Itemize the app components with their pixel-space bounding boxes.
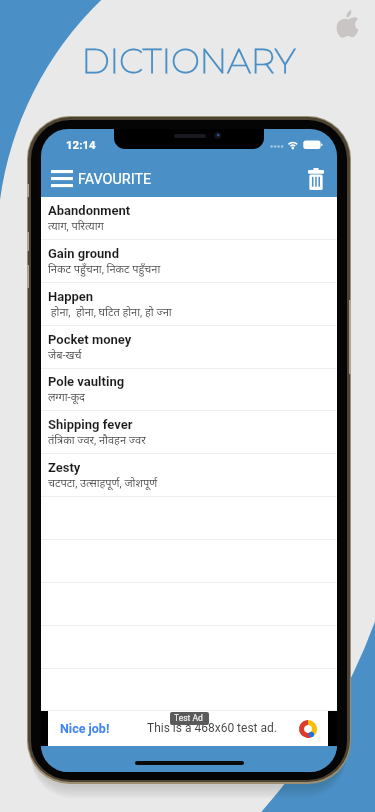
staticText: तंत्रिका ज्वर, नौवहन ज्वर [48, 432, 146, 447]
button[interactable]: Abandonment [41, 197, 337, 240]
button[interactable]: Delete all favourites [294, 162, 334, 196]
staticText: DICTIONARY [1, 40, 375, 81]
button[interactable]: Shipping fever [41, 411, 337, 454]
staticText: FAVOURITE [78, 171, 152, 188]
staticText: Happen [48, 289, 94, 304]
button[interactable]: Happen [41, 283, 337, 326]
button[interactable]: Open navigation drawer [43, 162, 77, 196]
button[interactable]: Nice job! [48, 711, 328, 746]
staticText: चटपटा, उत्साहपूर्ण, जोशपूर्ण [48, 475, 158, 490]
staticText: This is a 468x60 test ad. [147, 721, 277, 735]
staticText: जेब-खर्च [48, 347, 82, 362]
staticText: होना, होना, घटित होना, हो ज्ना [48, 304, 172, 319]
staticText: Zesty [48, 460, 81, 475]
staticText: त्याग, परित्याग [48, 218, 104, 233]
staticText: निकट पहुँचना, निकट पहुँचना [48, 261, 161, 276]
staticText: Shipping fever [48, 417, 133, 432]
button[interactable] [41, 668, 337, 711]
button[interactable]: Pole vaulting [41, 368, 337, 411]
staticText: Pocket money [48, 332, 132, 347]
staticText: Pole vaulting [48, 374, 125, 389]
staticText: Abandonment [48, 203, 131, 218]
button[interactable]: Gain ground [41, 240, 337, 283]
staticText: 12:14 [66, 138, 96, 151]
button[interactable]: Pocket money [41, 326, 337, 369]
staticText: Test Ad [174, 713, 203, 723]
staticText: लग्गा-कूद [48, 389, 85, 404]
button[interactable]: Zesty [41, 454, 337, 497]
staticText: Gain ground [48, 246, 119, 261]
staticText: Nice job! [60, 721, 110, 736]
